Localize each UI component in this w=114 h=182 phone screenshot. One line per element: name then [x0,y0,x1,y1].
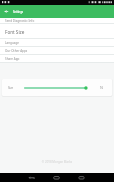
staticText: Send Diagnostic Info [5,19,35,23]
staticText: Settings [13,10,24,14]
button[interactable]: Back [27,173,36,182]
button[interactable]: Send Diagnostic Info [0,18,114,23]
staticText: Language [5,41,20,45]
button[interactable]: Font Size [0,24,114,38]
staticText: Font Size [5,29,25,35]
button[interactable]: Navigate up [2,7,11,16]
button[interactable]: Font size slider [24,83,94,92]
staticText: Our Other Apps [5,49,28,53]
button[interactable]: Language [0,39,114,46]
button[interactable]: Our Other Apps [0,47,114,54]
staticText: Size [8,86,14,90]
staticText: © 2018 Morgan Marks [0,160,114,164]
button[interactable]: Home [52,173,61,182]
staticText: 16 [100,86,104,90]
button[interactable]: Recent apps [77,173,86,182]
button[interactable]: Share App [0,55,114,62]
staticText: Share App [5,57,20,61]
